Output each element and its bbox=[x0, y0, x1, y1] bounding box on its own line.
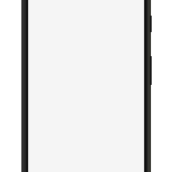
button[interactable]: Volume bbox=[148, 15, 153, 33]
button[interactable]: Power bbox=[148, 56, 153, 85]
button[interactable]: Phone display bbox=[28, 0, 144, 172]
